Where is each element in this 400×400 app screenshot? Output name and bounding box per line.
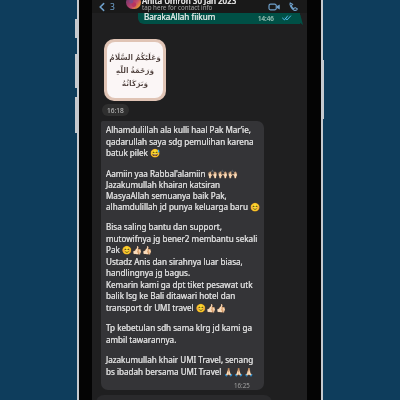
staticText: MasyaAllah semuanya baik Pak, bbox=[106, 190, 227, 201]
staticText: 14:46 bbox=[258, 14, 274, 22]
button[interactable] bbox=[101, 121, 264, 390]
staticText: ambil tawarannya. bbox=[106, 334, 177, 345]
staticText: Ustadz Anis dan sirahnya luar biasa, bbox=[106, 256, 243, 267]
staticText: 16:18 bbox=[107, 106, 124, 115]
button[interactable]: Video call bbox=[267, 1, 281, 12]
staticText: alhamdulillah jd punya keluarga baru 😊 bbox=[106, 201, 261, 212]
staticText: Anita Umroh 30 Jan 2023 bbox=[142, 0, 237, 6]
staticText: tap here for contact info bbox=[142, 3, 213, 11]
staticText: Pak 😊👍🏻👍🏻 bbox=[106, 244, 153, 255]
staticText: Jazakumullah khairan katsiran bbox=[106, 179, 221, 190]
staticText: handlingnya jg bagus. bbox=[106, 267, 191, 278]
staticText: Kemarin kami ga dpt tiket pesawat utk bbox=[106, 279, 253, 290]
staticText: qadarullah saya sdg pemulihan karena bbox=[106, 136, 254, 147]
staticText: bs ibadah bersama UMI Travel 🙏🏻🙏🏻🙏🏻 bbox=[106, 366, 254, 377]
staticText: Alhamdulillah ala kulli haal Pak Mar‘ie, bbox=[106, 124, 251, 135]
staticText: batuk pilek 😅 bbox=[106, 147, 161, 158]
staticText: Bisa saling bantu dan support, bbox=[106, 221, 222, 232]
staticText: 16:25 bbox=[234, 381, 250, 389]
staticText: BarakaAllah fiikum bbox=[144, 11, 216, 22]
staticText: transport dr UMI travel 😊👍🏻👍🏻 bbox=[106, 302, 227, 313]
staticText: 3 bbox=[110, 1, 115, 13]
staticText: mutowifnya jg bener2 membantu sekali bbox=[106, 233, 258, 244]
button[interactable]: BarakaAllah fiikum bbox=[138, 1, 300, 24]
button[interactable]: Back bbox=[96, 0, 108, 13]
staticText: وَعَلَيْكُمُ السَّلَامُ وَرَحْمَةُ اللّه… bbox=[109, 52, 161, 88]
button[interactable]: Call bbox=[286, 1, 300, 12]
staticText: Jazakumullah khair UMI Travel, senang bbox=[106, 354, 254, 365]
staticText: Tp kebetulan sdh sama klrg jd kami ga bbox=[106, 322, 252, 333]
staticText: balik lsg ke Bali ditawari hotel dan bbox=[106, 290, 236, 301]
staticText: Aamiin yaa Rabbal'alamiin 🙌🏻🙌🏻🙌🏻 bbox=[106, 168, 238, 179]
